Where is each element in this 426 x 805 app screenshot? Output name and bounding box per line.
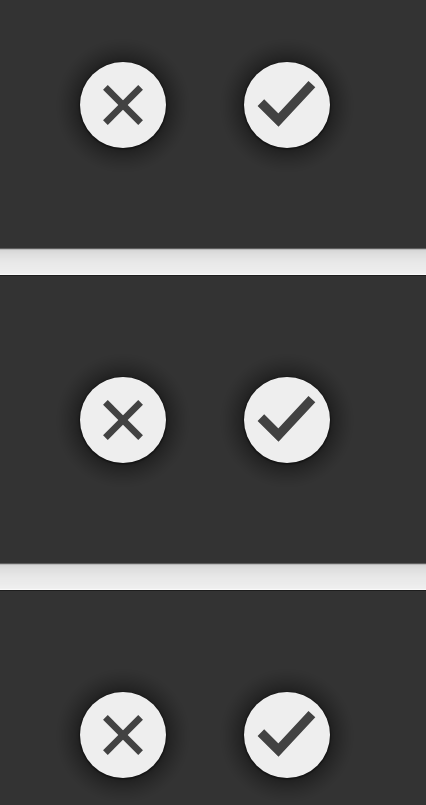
button[interactable]: Accept <box>244 692 330 778</box>
button[interactable]: Reject <box>80 692 166 778</box>
button[interactable]: Reject <box>80 62 166 148</box>
button[interactable]: Accept <box>244 377 330 463</box>
button[interactable]: Reject <box>80 377 166 463</box>
button[interactable]: Accept <box>244 62 330 148</box>
